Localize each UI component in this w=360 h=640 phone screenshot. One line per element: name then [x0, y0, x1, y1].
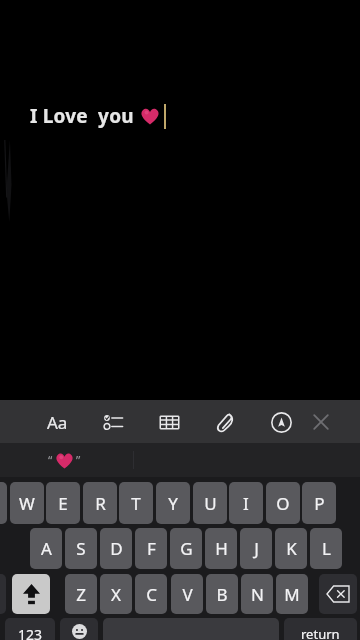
- button[interactable]: P: [302, 482, 336, 524]
- button[interactable]: O: [266, 482, 300, 524]
- button[interactable]: F: [135, 528, 167, 569]
- staticText: “: [48, 452, 53, 468]
- staticText: S: [76, 537, 86, 560]
- staticText: U: [204, 492, 217, 515]
- button[interactable]: A: [30, 528, 62, 569]
- button[interactable]: M: [276, 574, 308, 614]
- staticText: Y: [168, 492, 178, 515]
- button[interactable]: T: [119, 482, 153, 524]
- staticText: O: [276, 492, 290, 515]
- staticText: H: [215, 537, 228, 560]
- button[interactable]: B: [206, 574, 238, 614]
- staticText: D: [110, 537, 123, 560]
- button[interactable]: G: [170, 528, 202, 569]
- button[interactable]: Table: [152, 405, 186, 439]
- button[interactable]: Backspace: [319, 574, 357, 614]
- staticText: X: [111, 583, 121, 606]
- button[interactable]: D: [100, 528, 132, 569]
- button[interactable]: I Love you: [30, 103, 166, 129]
- button[interactable]: L: [310, 528, 342, 569]
- staticText: F: [147, 537, 156, 560]
- staticText: K: [286, 537, 297, 560]
- button[interactable]: Text format: [40, 405, 74, 439]
- button[interactable]: “: [48, 443, 81, 477]
- button[interactable]: N: [241, 574, 273, 614]
- button[interactable]: Shift: [12, 574, 50, 614]
- button[interactable]: W: [10, 482, 44, 524]
- button[interactable]: Close keyboard: [304, 405, 338, 439]
- button[interactable]: Y: [156, 482, 190, 524]
- button[interactable]: Q: [0, 482, 7, 524]
- staticText: Aa: [47, 411, 68, 434]
- button[interactable]: Checklist: [96, 405, 130, 439]
- button[interactable]: 123: [5, 618, 55, 640]
- staticText: C: [146, 583, 157, 606]
- button[interactable]: return: [284, 618, 357, 640]
- staticText: return: [301, 625, 340, 640]
- staticText: Z: [76, 583, 86, 606]
- button[interactable]: S: [65, 528, 97, 569]
- button[interactable]: Z: [65, 574, 97, 614]
- staticText: R: [95, 492, 106, 515]
- button[interactable]: V: [171, 574, 203, 614]
- button[interactable]: E: [46, 482, 80, 524]
- staticText: W: [19, 492, 35, 515]
- staticText: ”: [76, 452, 81, 468]
- staticText: L: [322, 537, 331, 560]
- button[interactable]: I: [229, 482, 263, 524]
- button[interactable]: X: [100, 574, 132, 614]
- staticText: J: [254, 537, 259, 560]
- button[interactable]: Emoji: [60, 618, 98, 640]
- staticText: B: [216, 583, 228, 606]
- button[interactable]: Attach: [208, 405, 242, 439]
- button[interactable]: C: [135, 574, 167, 614]
- staticText: I Love you: [30, 103, 139, 129]
- staticText: M: [284, 583, 300, 606]
- staticText: A: [41, 537, 52, 560]
- staticText: E: [58, 492, 68, 515]
- staticText: P: [314, 492, 325, 515]
- button[interactable]: R: [83, 482, 117, 524]
- staticText: T: [131, 492, 141, 515]
- button[interactable]: U: [193, 482, 227, 524]
- staticText: 123: [18, 625, 43, 640]
- staticText: V: [182, 583, 193, 606]
- button[interactable]: Markup: [264, 405, 298, 439]
- staticText: I: [243, 492, 249, 515]
- staticText: N: [251, 583, 264, 606]
- button[interactable]: J: [240, 528, 272, 569]
- staticText: G: [180, 537, 193, 560]
- button[interactable]: K: [275, 528, 307, 569]
- button[interactable]: H: [205, 528, 237, 569]
